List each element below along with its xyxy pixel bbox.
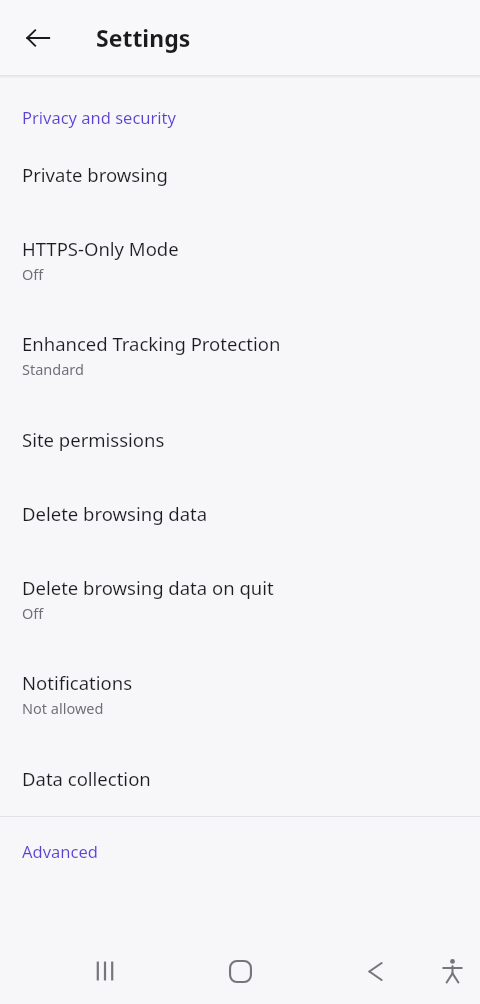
button[interactable]: Back bbox=[10, 10, 66, 66]
button[interactable]: Advanced bbox=[0, 817, 480, 872]
staticText: Delete browsing data bbox=[22, 501, 208, 526]
staticText: Private browsing bbox=[22, 162, 168, 187]
button[interactable]: Delete browsing data bbox=[0, 452, 480, 526]
staticText: Enhanced Tracking Protection bbox=[22, 331, 281, 356]
button[interactable]: Accessibility bbox=[424, 938, 480, 1004]
button[interactable]: Enhanced Tracking Protection bbox=[0, 283, 480, 378]
staticText: Delete browsing data on quit bbox=[22, 575, 274, 600]
button[interactable]: HTTPS-Only Mode bbox=[0, 187, 480, 283]
staticText: Site permissions bbox=[22, 427, 165, 452]
staticText: Settings bbox=[96, 22, 191, 53]
button[interactable]: Delete browsing data on quit bbox=[0, 526, 480, 622]
staticText: Data collection bbox=[22, 766, 151, 791]
button[interactable]: Notifications bbox=[0, 622, 480, 717]
button[interactable]: Site permissions bbox=[0, 378, 480, 452]
staticText: Standard bbox=[22, 359, 84, 378]
staticText: Not allowed bbox=[22, 698, 104, 717]
button[interactable]: Back bbox=[343, 938, 407, 1004]
staticText: HTTPS-Only Mode bbox=[22, 236, 179, 261]
staticText: Off bbox=[22, 603, 44, 622]
staticText: Advanced bbox=[22, 840, 98, 862]
staticText: Privacy and security bbox=[22, 106, 176, 128]
button[interactable]: Home bbox=[208, 938, 272, 1004]
button[interactable]: Private browsing bbox=[0, 128, 480, 187]
button[interactable]: Recent apps bbox=[73, 938, 137, 1004]
staticText: Off bbox=[22, 264, 44, 283]
button[interactable]: Data collection bbox=[0, 717, 480, 791]
staticText: Notifications bbox=[22, 670, 133, 695]
